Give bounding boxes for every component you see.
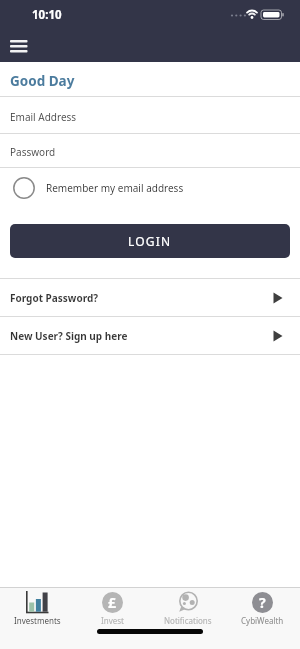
staticText: Email Address: [10, 110, 77, 124]
staticText: ?: [259, 593, 266, 612]
staticText: Forgot Password?: [10, 291, 99, 305]
button[interactable]: Notifications: [150, 588, 225, 649]
staticText: £: [108, 593, 117, 612]
button[interactable]: Remember my email address: [0, 168, 300, 212]
button[interactable]: New User? Sign up here: [0, 317, 300, 354]
staticText: Password: [10, 145, 56, 159]
staticText: CybiWealth: [241, 615, 284, 626]
staticText: 10:10: [32, 7, 62, 23]
button[interactable]: Forgot Password?: [0, 279, 300, 316]
staticText: Invest: [101, 615, 124, 626]
button[interactable]: [4, 32, 34, 60]
staticText: LOGIN: [128, 233, 172, 249]
button[interactable]: Email Address: [0, 97, 300, 133]
staticText: Remember my email address: [46, 181, 184, 195]
staticText: Good Day: [10, 72, 75, 90]
button[interactable]: ?: [225, 588, 300, 649]
button[interactable]: Password: [0, 134, 300, 167]
staticText: Notifications: [164, 615, 212, 626]
staticText: New User? Sign up here: [10, 329, 128, 343]
button[interactable]: LOGIN: [10, 224, 290, 258]
button[interactable]: £: [75, 588, 150, 649]
staticText: Investments: [14, 615, 61, 626]
button[interactable]: Investments: [0, 588, 75, 649]
